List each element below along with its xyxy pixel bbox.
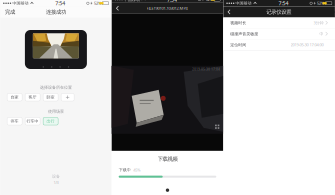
staticText: 视频时长: [230, 20, 246, 25]
staticText: 完成: [5, 9, 15, 15]
button[interactable]: 定位时间: [223, 39, 335, 50]
staticText: 记录仪设置: [266, 9, 291, 15]
staticText: 45%: [133, 167, 140, 173]
staticText: 52%: [317, 1, 324, 6]
button[interactable]: 完成: [0, 7, 20, 17]
staticText: 客厅: [29, 95, 37, 100]
staticText: 52%: [205, 0, 212, 2]
staticText: 自家: [11, 95, 19, 100]
staticText: 3分钟: [313, 20, 323, 25]
staticText: 7:54: [279, 0, 289, 7]
button[interactable]: 视频时长: [223, 17, 335, 28]
staticText: 行车中: [27, 119, 39, 124]
button[interactable]: Grid view: [213, 123, 221, 131]
staticText: 1/3: [53, 180, 58, 185]
button[interactable]: 客厅: [25, 93, 40, 101]
staticText: 定位时间: [230, 42, 246, 47]
staticText: 连接成功: [46, 9, 66, 15]
staticText: 7:54: [167, 0, 177, 3]
staticText: 7:54: [55, 0, 65, 7]
button[interactable]: 停车: [7, 117, 22, 125]
staticText: 碰撞声音灵敏度: [230, 31, 258, 36]
button[interactable]: 出行: [43, 117, 58, 125]
button[interactable]: 自家: [7, 93, 22, 101]
staticText: 下载视频: [157, 156, 177, 162]
button[interactable]: [61, 93, 74, 101]
button[interactable]: Back: [112, 3, 123, 13]
staticText: 中国移动: [236, 1, 252, 6]
button[interactable]: Back: [223, 7, 234, 17]
staticText: 选择设备所在位置: [40, 85, 72, 90]
staticText: 出行: [47, 119, 55, 124]
staticText: FILE190101-103012.MP4: [147, 6, 188, 11]
staticText: 卧室: [47, 95, 55, 100]
button[interactable]: Home: [163, 186, 172, 195]
staticText: 使用场景: [48, 109, 64, 114]
staticText: 停车: [11, 119, 19, 124]
staticText: 中: [319, 31, 323, 36]
button[interactable]: 行车中: [25, 117, 40, 125]
button[interactable]: 卧室: [43, 93, 58, 101]
staticText: 2019-05-30 17:04: [192, 68, 220, 71]
button[interactable]: 碰撞声音灵敏度: [223, 28, 335, 39]
staticText: 设备: [52, 174, 60, 179]
staticText: 下载中: [119, 168, 131, 172]
staticText: 中国移动: [12, 1, 28, 6]
staticText: 中国移动: [124, 0, 140, 2]
staticText: 2019-05-30 17:04:00: [290, 42, 323, 47]
staticText: 52%: [94, 1, 101, 6]
